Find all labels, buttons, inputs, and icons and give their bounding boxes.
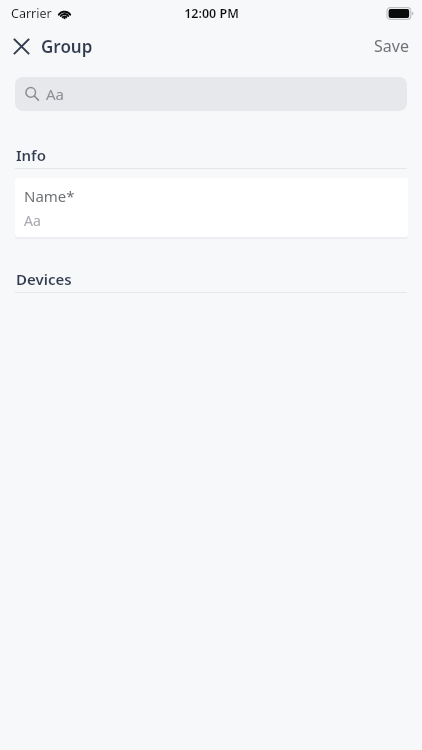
staticText: Info — [16, 145, 46, 165]
button[interactable]: Close — [0, 29, 103, 63]
button[interactable]: Name* — [15, 178, 408, 237]
staticText: Group — [41, 35, 93, 58]
button[interactable]: Aa — [15, 77, 407, 111]
staticText: Aa — [24, 211, 41, 230]
staticText: 12:00 PM — [184, 5, 239, 22]
staticText: Devices — [16, 269, 72, 289]
staticText: Aa — [46, 84, 65, 104]
other: Close — [9, 34, 33, 58]
staticText: Save — [374, 35, 409, 57]
button[interactable]: Save — [360, 29, 422, 63]
staticText: Carrier — [11, 5, 52, 22]
staticText: Name* — [24, 186, 75, 206]
